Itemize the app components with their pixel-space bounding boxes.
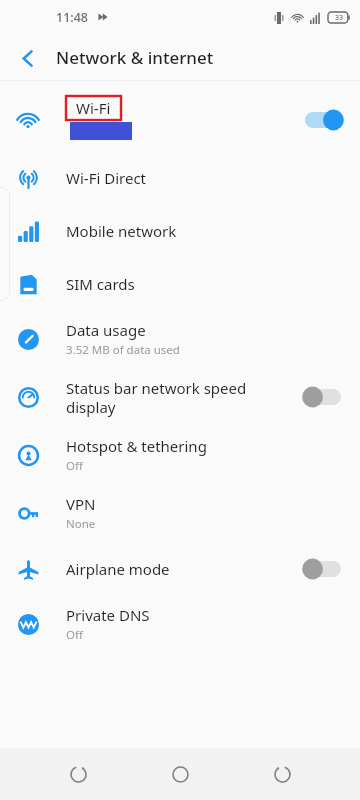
staticText: Mobile network [66,221,177,241]
staticText: Wi-Fi Direct [66,168,146,188]
staticText: Off [66,627,83,643]
staticText: 11:48 [56,9,89,26]
button[interactable]: Recents [54,750,102,798]
staticText: Network & internet [56,46,214,69]
button[interactable]: Mobile network [0,204,360,257]
staticText: Wi-Fi [76,98,111,118]
button[interactable]: VPN [0,484,360,542]
button[interactable]: Airplane mode [0,542,360,595]
staticText: Data usage [66,320,146,340]
staticText: VPN [66,494,96,514]
staticText: Status bar network speed display [66,378,292,417]
button[interactable]: Back [258,750,306,798]
button[interactable]: Hotspot & tethering [0,426,360,484]
staticText: Off [66,458,83,474]
staticText: 3.52 MB of data used [66,342,180,358]
staticText: SIM cards [66,274,135,294]
staticText: Private DNS [66,605,150,625]
staticText: Hotspot & tethering [66,436,207,456]
button[interactable]: Back [8,38,48,78]
staticText: None [66,516,96,532]
button[interactable]: Wi-Fi Direct [0,151,360,204]
button[interactable]: Toggle off [300,556,346,582]
button[interactable]: Toggle on [300,107,346,133]
button[interactable]: Status bar network speed display [0,368,360,426]
staticText: 33 [335,13,344,23]
button[interactable]: Wi-Fi [0,89,360,151]
button[interactable]: Private DNS [0,595,360,653]
button[interactable]: Toggle off [300,384,346,410]
button[interactable]: SIM cards [0,257,360,310]
staticText: Airplane mode [66,559,170,579]
button[interactable]: Data usage [0,310,360,368]
button[interactable]: Home [156,750,204,798]
